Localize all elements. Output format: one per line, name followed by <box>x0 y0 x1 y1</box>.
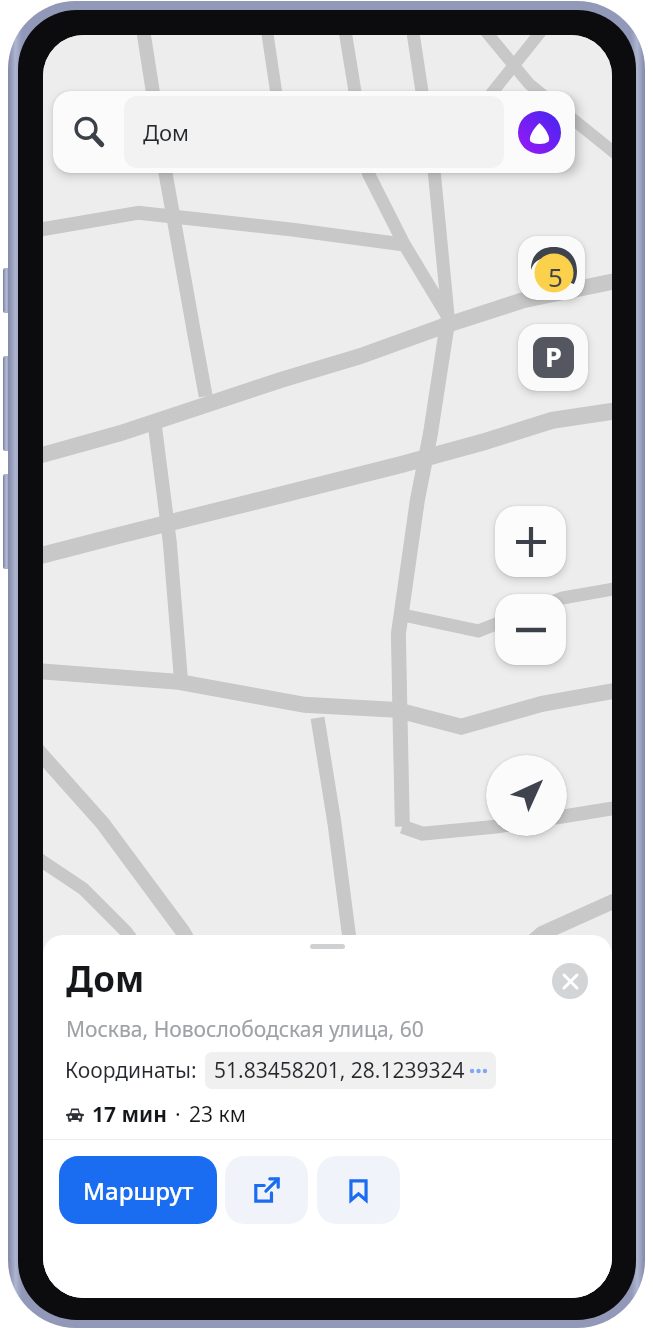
button[interactable]: Traffic <box>518 236 585 300</box>
button[interactable]: 51.83458201, 28.1239324 <box>205 1052 496 1089</box>
button[interactable]: Share <box>225 1156 308 1224</box>
staticText: 5 <box>548 259 563 294</box>
staticText: Дом <box>66 955 145 1003</box>
button[interactable]: Alice assistant <box>504 91 575 173</box>
button[interactable]: Zoom in <box>495 506 566 577</box>
button[interactable]: Parking <box>518 324 588 391</box>
staticText: Дом <box>143 117 190 147</box>
button[interactable]: Zoom out <box>495 594 566 665</box>
staticText: 51.83458201, 28.1239324 <box>214 1056 465 1085</box>
button[interactable]: Close <box>552 963 588 999</box>
staticText: Москва, Новослободская улица, 60 <box>66 1015 424 1044</box>
staticText: Координаты: <box>65 1056 197 1085</box>
button[interactable]: Search <box>53 91 124 173</box>
button[interactable]: Маршрут <box>59 1156 217 1224</box>
staticText: 17 мин <box>92 1100 167 1129</box>
staticText: 23 км <box>189 1100 246 1129</box>
button[interactable]: Bookmark <box>317 1156 400 1224</box>
staticText: Маршрут <box>83 1174 194 1207</box>
staticText: P <box>545 338 562 375</box>
staticText: · <box>175 1100 181 1129</box>
button[interactable]: My location <box>486 755 567 836</box>
button[interactable]: Дом <box>124 96 504 168</box>
